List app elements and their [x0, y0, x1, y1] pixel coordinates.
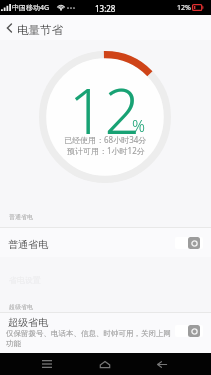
staticText: 省电设置 [9, 275, 41, 285]
staticText: % [132, 115, 145, 137]
staticText: 普通省电 [8, 238, 48, 251]
staticText: 13:28 [95, 3, 116, 14]
staticText: 超级省电 [8, 316, 48, 329]
button[interactable]: Back [0, 15, 18, 40]
staticText: 普通省电 [9, 213, 33, 221]
button[interactable]: 超级省电 [0, 313, 211, 353]
button[interactable]: Home [85, 353, 125, 375]
staticText: 12% [177, 3, 191, 13]
staticText: 12 [69, 68, 140, 152]
staticText: 中国移动4G [12, 3, 50, 13]
button[interactable]: Toggle [175, 325, 203, 337]
staticText: 已经使用：68小时34分 [64, 134, 147, 145]
button[interactable]: Toggle [175, 237, 203, 249]
button[interactable]: 普通省电 [0, 228, 211, 258]
staticText: 超级省电 [9, 303, 33, 311]
button[interactable]: Back [142, 353, 182, 375]
staticText: 仅保留拨号、电话本、信息、时钟可用，关闭上网 功能 [6, 329, 171, 349]
staticText: 预计可用：1小时12分 [67, 145, 145, 156]
staticText: 电量节省 [17, 23, 63, 37]
button[interactable]: Menu [27, 353, 67, 375]
